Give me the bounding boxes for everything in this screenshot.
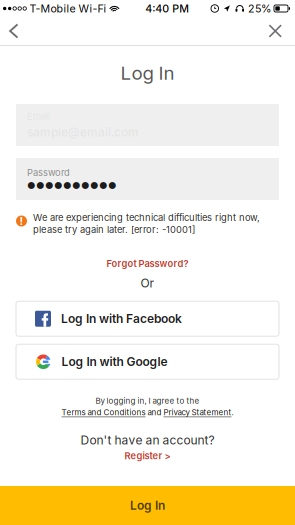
button[interactable]: Forgot Password? — [92, 253, 202, 274]
staticText: 4:40 PM — [145, 2, 189, 15]
staticText: Log In with Google — [61, 355, 167, 369]
staticText: Don't have an account? — [80, 433, 214, 447]
staticText: Email — [27, 111, 50, 122]
button[interactable]: Close — [252, 17, 295, 45]
staticText: By logging in, I agree to the — [95, 396, 199, 406]
staticText: ●●●●●●●●●● — [27, 180, 117, 191]
staticText: Or — [140, 276, 154, 290]
staticText: 25% — [248, 2, 271, 15]
staticText: please try again later. [error: -10001] — [33, 224, 195, 235]
staticText: Register > — [124, 450, 170, 461]
staticText: T-Mobile Wi-Fi — [29, 2, 106, 15]
button[interactable]: Log In with Facebook — [16, 301, 279, 336]
staticText: Forgot Password? — [106, 258, 188, 269]
staticText: ! — [19, 215, 23, 227]
staticText: Log In — [130, 498, 165, 513]
button[interactable]: Register > — [114, 448, 180, 463]
staticText: Log In with Facebook — [61, 312, 182, 326]
staticText: Log In — [120, 62, 174, 84]
staticText: We are experiencing technical difficulti… — [33, 212, 260, 223]
staticText: sample@email.com — [27, 125, 139, 139]
staticText: Password — [27, 167, 70, 178]
button[interactable]: Log In with Google — [16, 344, 279, 379]
button[interactable]: Back — [0, 17, 34, 45]
staticText: Terms and Conditions and Privacy Stateme… — [61, 408, 233, 417]
button[interactable]: Log In — [0, 486, 295, 525]
